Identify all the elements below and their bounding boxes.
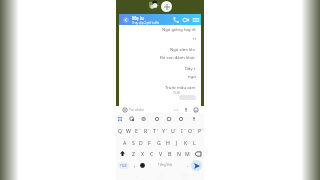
staticText: W bbox=[126, 127, 131, 134]
staticText: 6 bbox=[166, 127, 168, 130]
staticText: V bbox=[159, 150, 163, 157]
staticText: Để con đánh khúc bbox=[160, 55, 196, 61]
staticText: Dậy r bbox=[185, 66, 196, 72]
button[interactable]: I bbox=[177, 124, 186, 137]
button[interactable]: H bbox=[163, 137, 172, 148]
button[interactable]: More options bbox=[172, 106, 179, 113]
staticText: Z bbox=[132, 150, 135, 157]
button[interactable]: L bbox=[190, 137, 199, 148]
button[interactable]: Emoji bbox=[153, 115, 161, 123]
staticText: 7 bbox=[175, 127, 177, 130]
staticText: M bbox=[185, 150, 190, 157]
button[interactable]: E bbox=[132, 124, 141, 137]
staticText: , bbox=[134, 162, 136, 169]
button[interactable]: G bbox=[154, 137, 163, 148]
staticText: ri bbox=[193, 36, 196, 42]
staticText: 3 bbox=[139, 127, 141, 130]
staticText: ?123 bbox=[120, 164, 127, 168]
button[interactable]: , bbox=[131, 159, 138, 171]
staticText: U bbox=[171, 127, 175, 134]
button[interactable]: Emoji bbox=[138, 159, 146, 171]
staticText: E bbox=[135, 127, 138, 134]
button[interactable]: Settings bbox=[177, 115, 185, 123]
button[interactable]: T bbox=[150, 124, 159, 137]
staticText: R bbox=[144, 127, 148, 134]
staticText: D bbox=[139, 139, 143, 146]
button[interactable]: Voice message bbox=[182, 106, 189, 113]
staticText: F bbox=[148, 139, 151, 146]
button[interactable]: X bbox=[138, 148, 147, 159]
staticText: 9 bbox=[193, 127, 195, 130]
button[interactable]: Z bbox=[128, 148, 138, 159]
button[interactable]: Voice input bbox=[190, 115, 198, 123]
button[interactable]: A bbox=[121, 137, 129, 148]
staticText: 5 bbox=[157, 127, 159, 130]
staticText: C bbox=[150, 150, 154, 157]
staticText: Ngủ sớm lên bbox=[170, 47, 196, 53]
button[interactable]: Add story bbox=[161, 1, 172, 12]
button[interactable]: GIF bbox=[165, 115, 173, 123]
button[interactable]: K bbox=[181, 137, 190, 148]
button[interactable]: W bbox=[124, 124, 132, 137]
button[interactable]: ?123 bbox=[118, 162, 129, 169]
staticText: 10:28 bbox=[173, 91, 180, 95]
button[interactable]: P bbox=[195, 124, 204, 137]
button[interactable]: Video call bbox=[181, 14, 191, 25]
staticText: 0 bbox=[202, 127, 204, 130]
staticText: B bbox=[168, 150, 172, 157]
button[interactable]: Stickers bbox=[140, 115, 148, 123]
staticText: 4 bbox=[148, 127, 150, 130]
staticText: 8 bbox=[184, 127, 186, 130]
button[interactable]: M bbox=[183, 148, 192, 159]
staticText: ngủ bbox=[188, 74, 196, 80]
staticText: O bbox=[188, 127, 193, 134]
button[interactable]: J bbox=[172, 137, 181, 148]
button[interactable]: Emoji bbox=[121, 106, 128, 113]
button[interactable]: Send bbox=[191, 160, 202, 171]
staticText: I bbox=[181, 127, 183, 134]
button[interactable]: S bbox=[129, 137, 137, 148]
button[interactable]: Keyboard settings bbox=[116, 115, 124, 123]
button[interactable]: Y bbox=[159, 124, 168, 137]
button[interactable]: B bbox=[165, 148, 174, 159]
staticText: Q bbox=[118, 127, 123, 134]
staticText: 1 bbox=[122, 127, 124, 130]
staticText: Truớc mẫu cam bbox=[165, 85, 196, 91]
staticText: Tiếng Việt bbox=[158, 163, 172, 167]
staticText: J bbox=[176, 139, 178, 146]
button[interactable]: N bbox=[174, 148, 183, 159]
staticText: P bbox=[198, 127, 202, 134]
button[interactable]: V bbox=[156, 148, 165, 159]
button[interactable]: Gallery bbox=[192, 106, 199, 113]
staticText: Mẹ iu bbox=[132, 15, 144, 21]
button[interactable]: Story bbox=[149, 0, 160, 10]
button[interactable]: C bbox=[147, 148, 156, 159]
staticText: S bbox=[132, 139, 135, 146]
button[interactable]: Shift bbox=[116, 148, 128, 159]
button[interactable]: Q bbox=[116, 124, 124, 137]
staticText: Tin nhắn bbox=[129, 107, 144, 112]
staticText: T bbox=[153, 127, 156, 134]
button[interactable]: O bbox=[186, 124, 195, 137]
staticText: L bbox=[193, 139, 196, 146]
button[interactable]: F bbox=[145, 137, 154, 148]
button[interactable]: Menu bbox=[191, 14, 200, 25]
staticText: N bbox=[177, 150, 181, 157]
staticText: Truy cập 2 giờ trước bbox=[132, 21, 160, 25]
button[interactable]: Backspace bbox=[192, 148, 204, 159]
button[interactable]: D bbox=[137, 137, 145, 148]
button[interactable]: Tiếng Việt bbox=[146, 159, 184, 171]
staticText: 2 bbox=[130, 127, 132, 130]
button[interactable]: Clipboard bbox=[128, 115, 136, 123]
button[interactable]: U bbox=[168, 124, 177, 137]
button[interactable]: Back bbox=[121, 15, 130, 24]
staticText: A bbox=[123, 139, 127, 146]
button[interactable]: Call bbox=[171, 14, 181, 25]
button[interactable]: R bbox=[141, 124, 150, 137]
button[interactable]: . bbox=[184, 159, 191, 171]
staticText: G bbox=[157, 139, 161, 146]
staticText: Ngủ giống hay đi bbox=[162, 27, 196, 33]
